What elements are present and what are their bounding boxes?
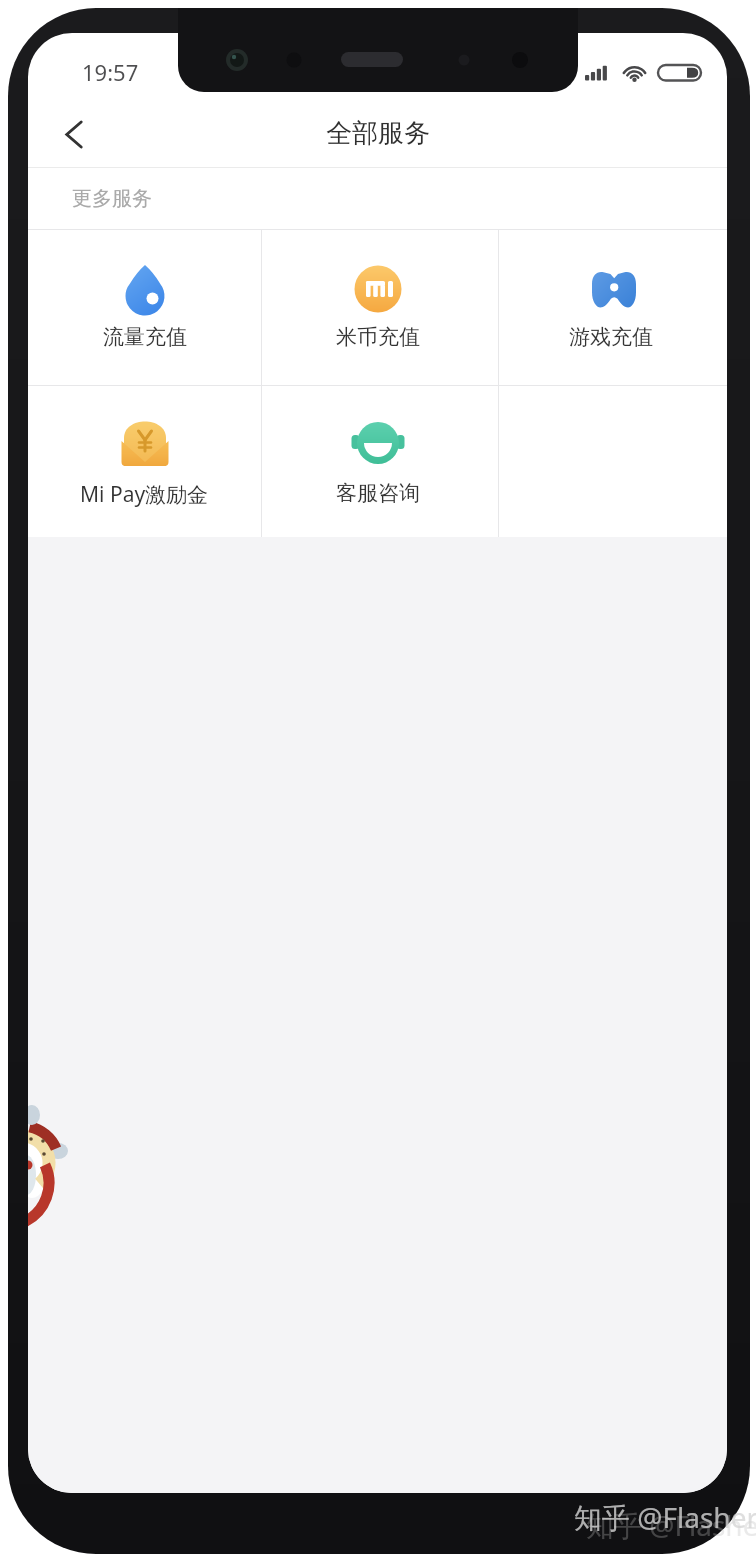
staticText: 更多服务 [72, 186, 152, 211]
button[interactable]: 米币充值 [261, 230, 494, 385]
button[interactable]: Mi Pay激励金 [28, 386, 261, 537]
staticText: 游戏充值 [569, 324, 653, 350]
button[interactable]: 客服咨询 [261, 386, 494, 537]
staticText: 知乎 @Flasher [586, 1506, 756, 1544]
staticText: Mi Pay激励金 [80, 480, 209, 509]
staticText: 米币充值 [336, 324, 420, 350]
button[interactable]: 更多服务 [28, 168, 727, 229]
button[interactable]: 游戏充值 [494, 230, 727, 385]
staticText: 流量充值 [103, 324, 187, 350]
staticText: 客服咨询 [336, 480, 420, 506]
staticText: 19:57 [82, 57, 139, 87]
staticText: 知乎 @Flasher [574, 1498, 756, 1536]
button[interactable] [48, 108, 100, 160]
button[interactable]: 流量充值 [28, 230, 261, 385]
staticText: 全部服务 [326, 117, 430, 150]
